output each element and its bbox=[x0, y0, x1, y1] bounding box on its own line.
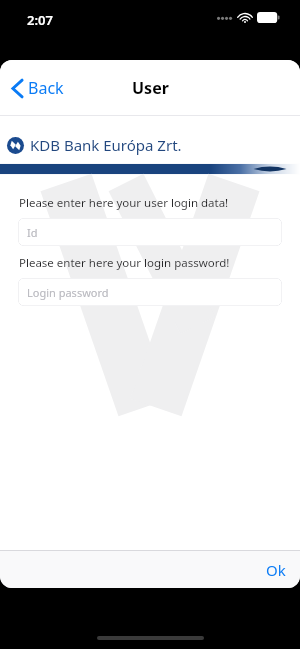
staticText: Id bbox=[27, 225, 38, 240]
staticText: KDB Bank Európa Zrt. bbox=[30, 135, 182, 155]
button[interactable]: Ok bbox=[252, 553, 300, 587]
staticText: Please enter here your login password! bbox=[19, 255, 230, 271]
staticText: 2:07 bbox=[27, 11, 53, 29]
button[interactable]: Id bbox=[18, 218, 282, 246]
button[interactable]: Back bbox=[8, 71, 68, 105]
button[interactable]: Login password bbox=[18, 278, 282, 306]
staticText: Please enter here your user login data! bbox=[19, 195, 229, 211]
staticText: User bbox=[132, 77, 169, 99]
staticText: Login password bbox=[27, 285, 109, 300]
staticText: Ok bbox=[266, 560, 286, 580]
staticText: Back bbox=[28, 77, 64, 99]
